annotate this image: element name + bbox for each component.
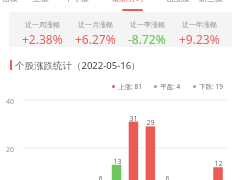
staticText: 创业板 [166,0,190,3]
staticText: 6 [98,174,103,180]
button[interactable]: 下跌: 19 [191,81,223,92]
staticText: 上涨: 81 [118,82,142,91]
staticText: 近一年涨幅 [182,20,217,29]
staticText: 13 [113,157,122,167]
staticText: +6.27% [75,31,116,47]
staticText: 40 [6,97,15,107]
staticText: 20 [6,145,15,155]
staticText: 个股涨跌统计（2022-05-16） [15,59,141,72]
button[interactable]: 中小板 [55,0,99,7]
staticText: 近一月涨幅 [78,20,113,29]
button[interactable]: 科创板 [0,0,28,7]
staticText: 科创板 [0,0,18,3]
button[interactable]: 新三板 [189,0,233,7]
staticText: 6 [165,174,170,180]
staticText: 近一周涨幅 [25,20,60,29]
staticText: +9.23% [179,31,220,47]
staticText: 中小板 [65,0,89,3]
staticText: 新三板 [199,0,223,3]
button[interactable]: 上涨: 81 [110,81,142,92]
staticText: 29 [146,118,155,128]
staticText: 12 [214,159,223,169]
staticText: -8.72% [128,31,166,47]
staticText: 近一季涨幅 [130,20,165,29]
button[interactable]: 主板 [19,0,63,7]
staticText: 主板 [33,0,49,3]
staticText: 下跌: 19 [199,82,223,91]
staticText: 最新分时 [112,0,144,3]
button[interactable]: 最新分时 [106,0,150,7]
button[interactable]: 平盘: 4 [152,81,181,92]
button[interactable]: 创业板 [156,0,200,7]
staticText: +2.38% [22,31,63,47]
staticText: 平盘: 4 [160,82,181,91]
staticText: 31 [129,114,138,124]
